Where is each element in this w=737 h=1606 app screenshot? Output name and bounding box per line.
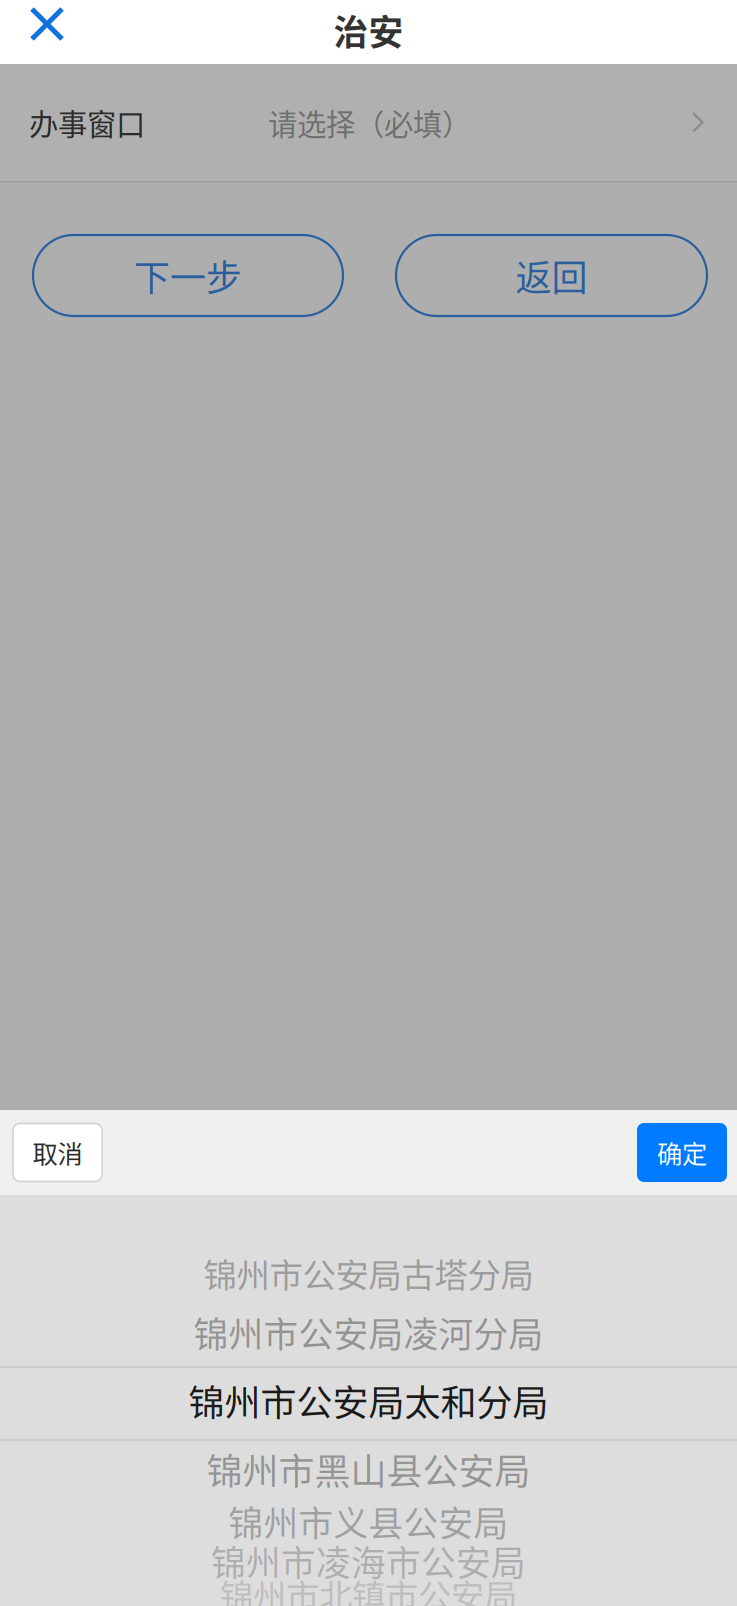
- button[interactable]: 取消: [13, 1123, 102, 1181]
- button[interactable]: 返回: [396, 235, 707, 316]
- staticText: 治安: [333, 5, 403, 55]
- staticText: 锦州市公安局太和分局: [188, 1374, 548, 1426]
- staticText: 办事窗口: [29, 101, 145, 144]
- staticText: 锦州市公安局凌河分局: [193, 1307, 543, 1358]
- staticText: 锦州市黑山县公安局: [206, 1443, 530, 1495]
- staticText: 锦州市北镇市公安局: [220, 1570, 517, 1606]
- staticText: 锦州市公安局古塔分局: [203, 1249, 533, 1297]
- button[interactable]: 下一步: [33, 235, 343, 316]
- staticText: 锦州市义县公安局: [228, 1496, 508, 1547]
- staticText: 下一步: [134, 249, 242, 301]
- button[interactable]: 关闭: [0, 0, 95, 58]
- button[interactable]: 办事窗口: [0, 64, 737, 181]
- button[interactable]: 确定: [637, 1123, 727, 1182]
- staticText: 确定: [657, 1134, 707, 1171]
- staticText: 请选择（必填）: [268, 101, 471, 144]
- staticText: 返回: [515, 249, 587, 301]
- staticText: 取消: [32, 1134, 82, 1171]
- staticText: 锦州市凌海市公安局: [211, 1536, 526, 1586]
